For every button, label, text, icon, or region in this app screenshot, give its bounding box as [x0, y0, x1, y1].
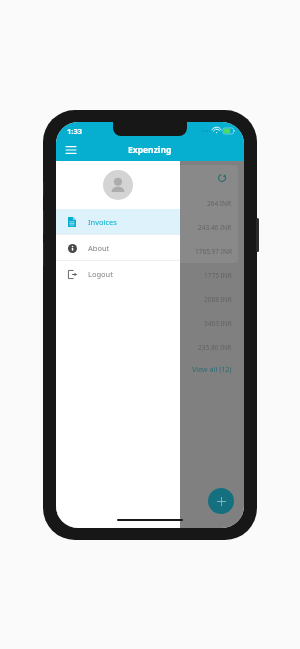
staticText: 3463 INR — [204, 319, 232, 328]
staticText: Expenzing — [128, 144, 172, 156]
staticText: 2088 INR — [204, 295, 232, 304]
button[interactable]: Open navigation menu — [63, 142, 79, 158]
staticText: 264 INR — [207, 199, 232, 208]
staticText: 1:33 — [67, 126, 82, 136]
button[interactable]: About — [56, 235, 180, 260]
staticText: 1765.97 INR — [195, 247, 232, 256]
button[interactable]: Add expense — [208, 488, 234, 514]
button[interactable]: View all (12) — [140, 359, 232, 381]
staticText: 243.46 INR — [198, 223, 232, 232]
button[interactable]: Invoices — [56, 209, 180, 234]
staticText: 1775 INR — [204, 271, 232, 280]
staticText: Logout — [88, 269, 113, 279]
button[interactable]: Refresh — [216, 172, 228, 184]
button[interactable]: Logout — [56, 261, 180, 286]
staticText: View all (12) — [192, 365, 232, 375]
staticText: About — [88, 243, 110, 253]
staticText: 235.86 INR — [198, 343, 232, 352]
staticText: Invoices — [88, 217, 117, 227]
